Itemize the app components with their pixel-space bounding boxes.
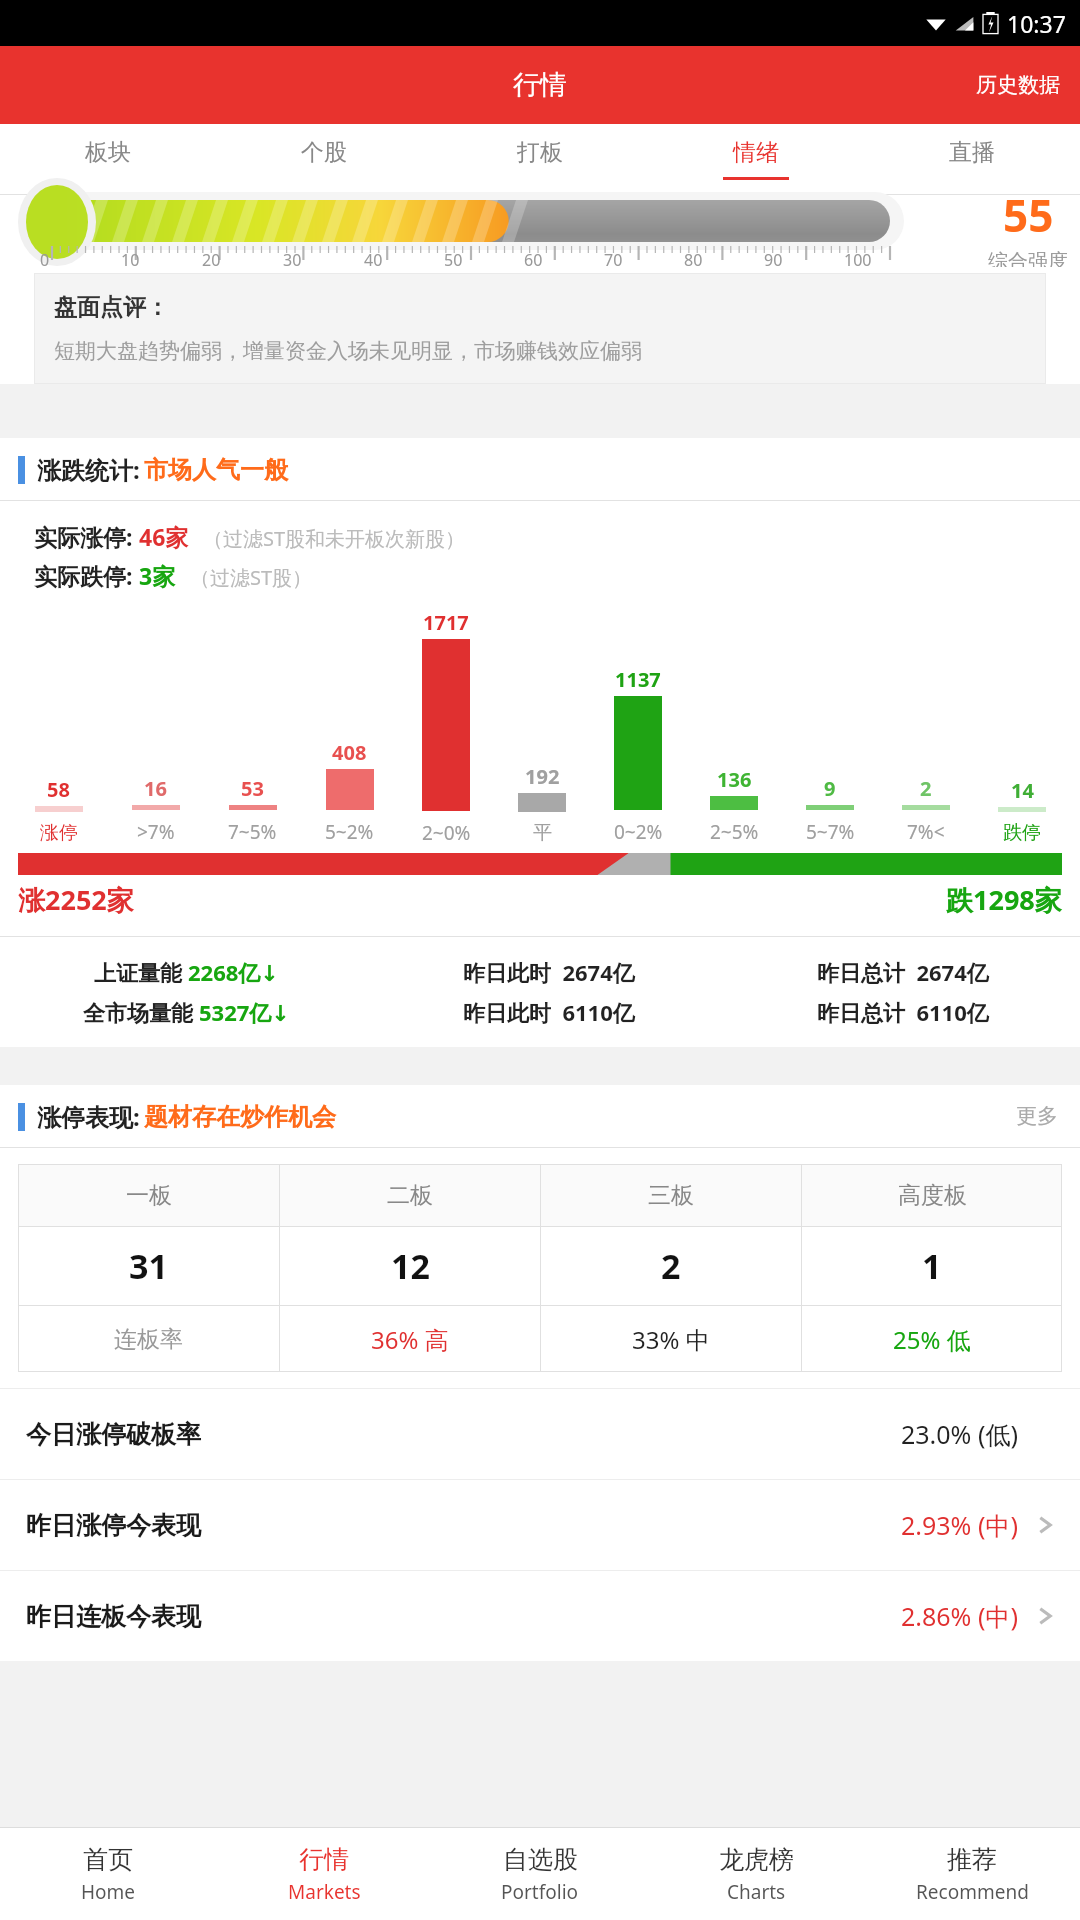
button[interactable]: 今日涨停破板率 xyxy=(0,1389,1080,1479)
staticText: 23.0% (低) xyxy=(901,1417,1018,1451)
staticText: 跌停 xyxy=(1003,821,1041,845)
staticText: 今日涨停破板率 xyxy=(26,1419,201,1450)
staticText: 综合强度 xyxy=(988,249,1068,267)
staticText: 100 xyxy=(844,249,872,271)
staticText: 自选股 xyxy=(503,1844,578,1875)
staticText: 龙虎榜 xyxy=(719,1844,794,1875)
button[interactable]: 板块 xyxy=(0,124,216,194)
button[interactable]: 直播 xyxy=(864,124,1080,194)
staticText: Portfolio xyxy=(501,1879,579,1905)
button[interactable]: 历史数据 xyxy=(956,60,1080,110)
staticText: 14 xyxy=(1011,777,1034,804)
staticText: 首页 xyxy=(83,1844,133,1875)
staticText: 直播 xyxy=(949,138,995,167)
staticText: 90 xyxy=(764,249,783,271)
staticText: Markets xyxy=(288,1879,361,1905)
button[interactable]: 个股 xyxy=(216,124,432,194)
staticText: 10 xyxy=(121,249,140,271)
staticText: 40 xyxy=(364,249,383,271)
button[interactable]: 昨日涨停今表现 xyxy=(0,1480,1080,1570)
staticText: 20 xyxy=(202,249,221,271)
button[interactable]: 首页 xyxy=(0,1828,216,1920)
staticText: 更多 xyxy=(1016,1103,1058,1129)
staticText: 盘面点评： xyxy=(54,293,169,322)
staticText: 市场人气一般 xyxy=(144,455,288,485)
staticText: 行情 xyxy=(299,1844,349,1875)
staticText: 0 xyxy=(40,249,50,271)
staticText: 昨日总计 6110亿 xyxy=(817,997,989,1027)
staticText: Charts xyxy=(727,1879,786,1905)
button[interactable]: 行情 xyxy=(216,1828,432,1920)
staticText: 70 xyxy=(604,249,623,271)
staticText: 55 xyxy=(1003,185,1054,245)
staticText: 60 xyxy=(524,249,543,271)
staticText: 25% 低 xyxy=(893,1323,971,1356)
staticText: 涨停表现: xyxy=(37,1100,140,1133)
staticText: 上证量能 xyxy=(94,957,188,987)
staticText: 10:37 xyxy=(1007,8,1066,39)
staticText: 涨跌统计: xyxy=(37,453,140,486)
staticText: 情绪 xyxy=(733,138,779,167)
staticText: 连板率 xyxy=(114,1325,183,1354)
staticText: 58 xyxy=(47,776,70,803)
staticText: 高度板 xyxy=(898,1181,967,1210)
staticText: 2~0% xyxy=(422,820,471,845)
staticText: 36% 高 xyxy=(371,1323,449,1356)
button[interactable]: 昨日连板今表现 xyxy=(0,1571,1080,1661)
button[interactable]: 自选股 xyxy=(432,1828,648,1920)
button[interactable]: 龙虎榜 xyxy=(648,1828,864,1920)
staticText: 0~2% xyxy=(614,819,663,845)
staticText: 192 xyxy=(525,763,560,790)
staticText: Recommend xyxy=(916,1879,1029,1905)
staticText: 2 xyxy=(661,1243,681,1289)
staticText: 历史数据 xyxy=(976,72,1060,98)
staticText: 5~2% xyxy=(325,819,374,845)
staticText: 涨停 xyxy=(40,821,78,845)
staticText: 16 xyxy=(144,775,167,802)
staticText: 408 xyxy=(332,739,367,766)
staticText: 2~5% xyxy=(710,819,759,845)
button[interactable]: 更多 xyxy=(994,1093,1080,1139)
staticText: 80 xyxy=(684,249,703,271)
staticText: 全市场量能 xyxy=(83,997,199,1027)
staticText: 1137 xyxy=(615,666,661,693)
staticText: 9 xyxy=(824,775,836,802)
staticText: （过滤ST股和未开板次新股） xyxy=(203,525,466,552)
staticText: 平 xyxy=(533,821,552,845)
staticText: （过滤ST股） xyxy=(190,564,313,591)
staticText: 板块 xyxy=(85,138,131,167)
button[interactable]: 情绪 xyxy=(648,124,864,194)
staticText: 5327亿↓ xyxy=(199,997,290,1027)
staticText: 31 xyxy=(129,1243,168,1289)
staticText: 涨2252家 xyxy=(18,881,134,918)
button[interactable]: 推荐 xyxy=(864,1828,1080,1920)
staticText: 昨日此时 2674亿 xyxy=(463,957,635,987)
staticText: 三板 xyxy=(648,1181,694,1210)
staticText: 实际跌停: xyxy=(34,560,139,591)
staticText: 33% 中 xyxy=(632,1323,710,1356)
staticText: >7% xyxy=(137,819,175,845)
staticText: 136 xyxy=(717,766,752,793)
staticText: 跌1298家 xyxy=(946,881,1062,918)
staticText: 一板 xyxy=(126,1181,172,1210)
staticText: 1 xyxy=(922,1243,942,1289)
staticText: 1717 xyxy=(423,609,469,636)
staticText: 50 xyxy=(444,249,463,271)
staticText: 实际涨停: xyxy=(34,521,139,552)
staticText: 2268亿↓ xyxy=(188,957,279,987)
staticText: 7~5% xyxy=(228,819,277,845)
staticText: 打板 xyxy=(517,138,563,167)
staticText: 7%< xyxy=(907,819,945,845)
staticText: 二板 xyxy=(387,1181,433,1210)
staticText: 2.86% (中) xyxy=(901,1599,1018,1633)
staticText: 昨日总计 2674亿 xyxy=(817,957,989,987)
staticText: 行情 xyxy=(513,68,567,102)
staticText: 46家 xyxy=(139,521,189,552)
staticText: 昨日涨停今表现 xyxy=(26,1510,201,1541)
staticText: 53 xyxy=(241,775,264,802)
staticText: 5~7% xyxy=(806,819,855,845)
button[interactable]: 打板 xyxy=(432,124,648,194)
staticText: 个股 xyxy=(301,138,347,167)
staticText: Home xyxy=(81,1879,136,1905)
staticText: 推荐 xyxy=(947,1844,997,1875)
